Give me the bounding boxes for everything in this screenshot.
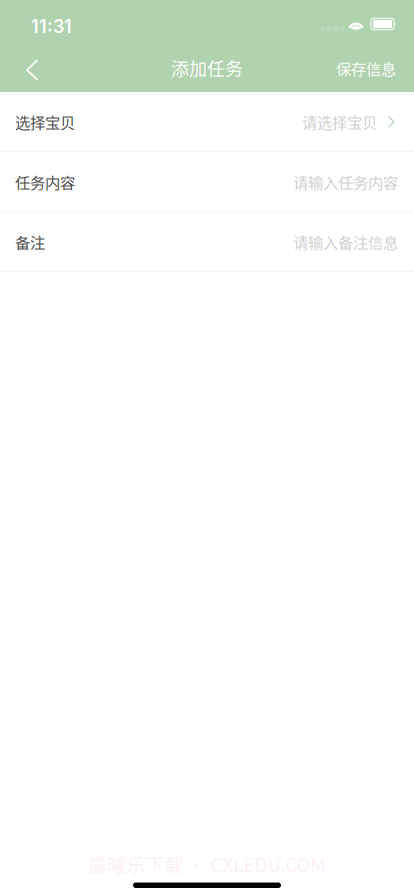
staticText: 请输入任务内容 — [293, 171, 398, 193]
staticText: 选择宝贝 — [15, 111, 75, 133]
staticText: 11:31 — [31, 16, 72, 37]
button[interactable]: 任务内容 — [0, 152, 414, 212]
button[interactable]: Back — [6, 45, 50, 91]
button[interactable]: 选择宝贝 — [0, 92, 414, 152]
button[interactable]: 保存信息 — [322, 45, 410, 91]
staticText: 任务内容 — [15, 171, 75, 193]
staticText: 请输入备注信息 — [293, 231, 398, 253]
staticText: 保存信息 — [336, 57, 396, 79]
staticText: 添加任务 — [171, 55, 243, 81]
staticText: 请选择宝贝 — [302, 111, 377, 133]
staticText: 晨曦乐下载 · CXLEDU.COM — [88, 850, 325, 877]
staticText: 备注 — [15, 231, 45, 253]
button[interactable]: 备注 — [0, 212, 414, 272]
